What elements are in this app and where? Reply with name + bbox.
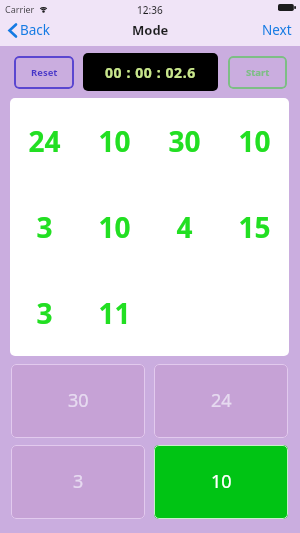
staticText: 30 [68, 388, 89, 413]
staticText: 00 : 00 : 02.6 [105, 63, 196, 82]
button[interactable]: 30 [149, 98, 219, 184]
staticText: 24 [28, 122, 61, 160]
button[interactable]: Back [0, 21, 59, 39]
button[interactable]: 3 [10, 184, 79, 270]
staticText: 15 [238, 208, 271, 246]
staticText: 10 [98, 208, 131, 246]
button[interactable]: 24 [10, 98, 79, 184]
staticText: 4 [176, 208, 193, 246]
button[interactable]: 3 [11, 445, 145, 519]
button[interactable]: 10 [79, 184, 149, 270]
staticText: 10 [238, 122, 271, 160]
staticText: Start [246, 66, 270, 79]
button[interactable]: 10 [79, 98, 149, 184]
button[interactable]: 30 [11, 364, 145, 438]
button[interactable]: 10 [154, 445, 288, 519]
staticText: Reset [31, 66, 58, 79]
staticText: 3 [36, 208, 53, 246]
button[interactable]: Next [254, 21, 300, 39]
staticText: Next [262, 21, 292, 39]
staticText: Back [20, 21, 51, 39]
button[interactable]: Start [228, 56, 287, 89]
staticText: 3 [36, 294, 53, 332]
button[interactable]: Reset [14, 56, 74, 89]
button[interactable]: 24 [154, 364, 288, 438]
staticText: 24 [211, 388, 232, 413]
staticText: Mode [132, 21, 169, 39]
staticText: 11 [98, 294, 131, 332]
button[interactable]: 15 [219, 184, 289, 270]
staticText: 10 [211, 469, 232, 494]
button[interactable]: 4 [149, 184, 219, 270]
staticText: 30 [168, 122, 201, 160]
staticText: Carrier [5, 3, 35, 15]
button[interactable]: 3 [10, 270, 79, 356]
staticText: 10 [98, 122, 131, 160]
staticText: 3 [73, 469, 84, 494]
button[interactable]: 10 [219, 98, 289, 184]
button[interactable]: 11 [79, 270, 149, 356]
staticText: 12:36 [137, 3, 163, 17]
